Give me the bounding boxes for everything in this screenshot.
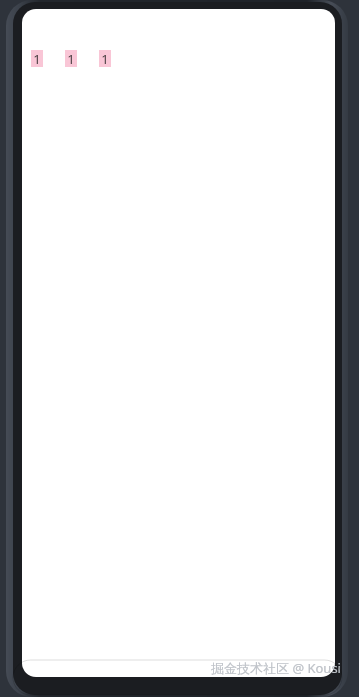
staticText: 1 [67,50,75,67]
button[interactable]: 1 [99,50,111,67]
staticText: 1 [101,50,109,67]
button[interactable]: 1 [31,50,43,67]
button[interactable]: 1 [65,50,77,67]
staticText: 1 [33,50,41,67]
staticText: 掘金技术社区 @ Kousi [211,659,341,677]
